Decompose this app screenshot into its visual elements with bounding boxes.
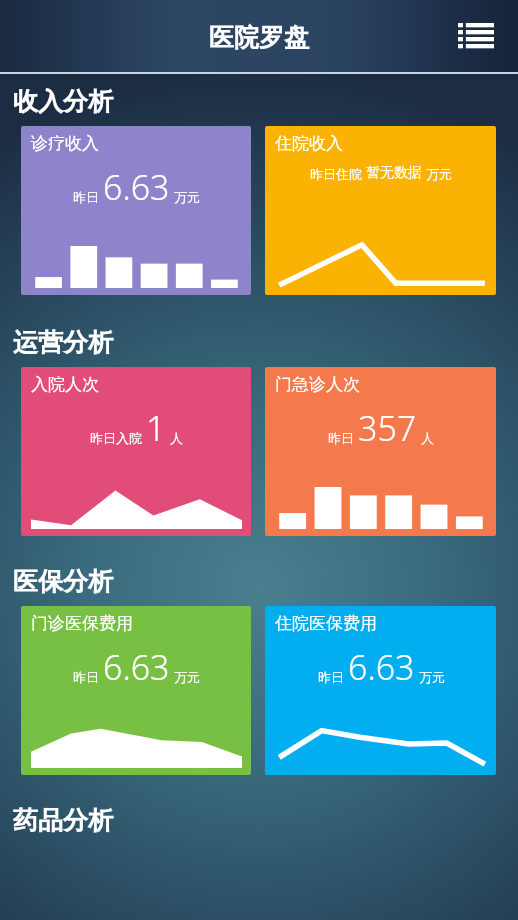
button[interactable]: 诊疗收入 — [21, 126, 251, 295]
staticText: 昨日 — [73, 189, 99, 205]
staticText: 昨日住院 — [310, 166, 362, 182]
staticText: 万元 — [426, 166, 452, 182]
staticText: 药品分析 — [13, 805, 113, 836]
staticText: 357 — [358, 405, 417, 451]
staticText: 人 — [170, 430, 183, 446]
staticText: 昨日 — [318, 669, 344, 685]
staticText: 暂无数据 — [366, 164, 422, 182]
staticText: 万元 — [174, 669, 200, 685]
staticText: 医保分析 — [13, 566, 113, 597]
staticText: 人 — [421, 430, 434, 446]
staticText: 万元 — [174, 189, 200, 205]
button[interactable]: 住院医保费用 — [265, 606, 496, 775]
staticText: 住院收入 — [275, 133, 343, 154]
button[interactable]: 门诊医保费用 — [21, 606, 251, 775]
staticText: 昨日 — [73, 669, 99, 685]
staticText: 6.63 — [103, 164, 170, 210]
staticText: 门诊医保费用 — [31, 613, 133, 634]
staticText: 运营分析 — [13, 327, 113, 358]
staticText: 昨日 — [328, 430, 354, 446]
button[interactable]: Menu — [454, 15, 498, 59]
button[interactable]: 门急诊人次 — [265, 367, 496, 536]
staticText: 收入分析 — [13, 86, 113, 117]
staticText: 入院人次 — [31, 374, 99, 395]
staticText: 6.63 — [348, 644, 415, 690]
button[interactable]: 住院收入 — [265, 126, 496, 295]
staticText: 昨日入院 — [90, 430, 142, 446]
staticText: 医院罗盘 — [209, 22, 309, 53]
staticText: 诊疗收入 — [31, 133, 99, 154]
staticText: 6.63 — [103, 644, 170, 690]
staticText: 住院医保费用 — [275, 613, 377, 634]
button[interactable]: 入院人次 — [21, 367, 251, 536]
staticText: 1 — [146, 405, 166, 451]
staticText: 万元 — [419, 669, 445, 685]
staticText: 门急诊人次 — [275, 374, 360, 395]
